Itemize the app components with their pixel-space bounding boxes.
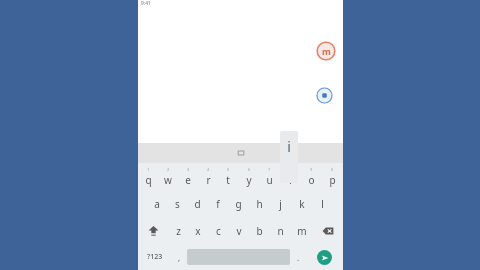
staticText: r	[206, 173, 211, 187]
button[interactable]: d	[187, 190, 207, 217]
staticText: 0	[331, 167, 334, 172]
staticText: w	[164, 173, 172, 187]
staticText: o	[308, 173, 315, 187]
button[interactable]: v	[228, 217, 249, 244]
staticText: 7	[268, 167, 271, 172]
staticText: h	[256, 197, 263, 211]
button[interactable]: x	[188, 217, 208, 244]
staticText: i	[287, 137, 291, 156]
button[interactable]: l	[312, 190, 333, 217]
button[interactable]: c	[208, 217, 228, 244]
button[interactable]: n	[270, 217, 291, 244]
staticText: t	[226, 173, 230, 187]
staticText: d	[194, 197, 201, 211]
button[interactable]: 8	[280, 163, 301, 190]
button[interactable]: z	[168, 217, 188, 244]
button[interactable]: a	[147, 190, 167, 217]
button[interactable]: b	[249, 217, 270, 244]
button[interactable]: Shift	[138, 217, 168, 244]
staticText: f	[216, 197, 220, 211]
button[interactable]: 6	[238, 163, 259, 190]
staticText: n	[277, 224, 284, 238]
button[interactable]: j	[270, 190, 291, 217]
staticText: m	[322, 45, 331, 57]
button[interactable]: 9	[301, 163, 322, 190]
staticText: m	[297, 224, 307, 238]
staticText: p	[329, 173, 336, 187]
staticText: 9:41	[141, 0, 151, 7]
staticText: i	[289, 173, 292, 187]
staticText: g	[235, 197, 242, 211]
button[interactable]: ?123	[138, 244, 171, 270]
button[interactable]: 7	[259, 163, 280, 190]
button[interactable]: g	[228, 190, 249, 217]
staticText: 2	[167, 167, 170, 172]
button[interactable]: Send	[317, 250, 332, 265]
button[interactable]: Backspace	[312, 217, 343, 244]
button[interactable]: h	[249, 190, 270, 217]
staticText: a	[154, 197, 160, 211]
staticText: 1	[147, 167, 150, 172]
staticText: v	[236, 224, 242, 238]
staticText: 3	[187, 167, 190, 172]
staticText: l	[321, 197, 324, 211]
staticText: c	[216, 224, 221, 238]
button[interactable]: ,	[171, 244, 187, 270]
staticText: s	[175, 197, 180, 211]
staticText: 9	[310, 167, 313, 172]
staticText: q	[145, 173, 152, 187]
button[interactable]: 4	[198, 163, 218, 190]
staticText: ,	[178, 252, 181, 263]
staticText: u	[266, 173, 273, 187]
button[interactable]: Suggestions	[138, 143, 343, 163]
button[interactable]: s	[167, 190, 187, 217]
staticText: 6	[248, 167, 251, 172]
button[interactable]: .	[290, 244, 306, 270]
staticText: 4	[207, 167, 210, 172]
button[interactable]: Message status	[316, 87, 333, 104]
button[interactable]: 5	[218, 163, 238, 190]
button[interactable]: 2	[158, 163, 178, 190]
button[interactable]: 0	[322, 163, 343, 190]
staticText: x	[195, 224, 201, 238]
staticText: b	[256, 224, 263, 238]
staticText: y	[246, 173, 252, 187]
button[interactable]: 1	[138, 163, 158, 190]
staticText: e	[185, 173, 191, 187]
staticText: z	[176, 224, 181, 238]
button[interactable]: Contact avatar	[316, 41, 336, 61]
button[interactable]: 3	[178, 163, 198, 190]
staticText: j	[279, 197, 282, 211]
button[interactable]: k	[291, 190, 312, 217]
staticText: .	[297, 252, 300, 263]
staticText: ?123	[147, 252, 163, 262]
button[interactable]: m	[291, 217, 312, 244]
button[interactable]: f	[207, 190, 228, 217]
staticText: 5	[227, 167, 230, 172]
staticText: k	[299, 197, 305, 211]
